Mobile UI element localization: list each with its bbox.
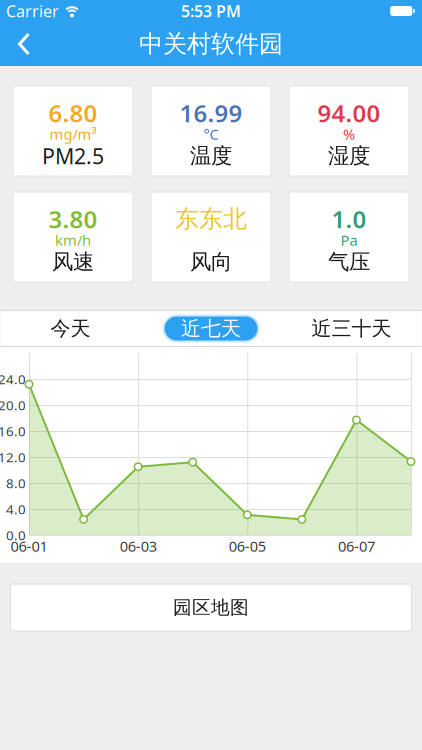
staticText: 东东北 <box>175 204 247 234</box>
staticText: 12.0 <box>0 448 26 466</box>
staticText: 94.00 <box>317 97 380 129</box>
staticText: 园区地图 <box>173 596 249 619</box>
staticText: 风速 <box>52 249 94 275</box>
staticText: 近七天 <box>181 316 241 341</box>
staticText: 3.80 <box>48 203 97 235</box>
button[interactable]: 今天 <box>0 311 140 346</box>
staticText: PM2.5 <box>42 142 104 170</box>
staticText: 1.0 <box>331 203 366 235</box>
staticText: 今天 <box>50 316 90 341</box>
staticText: 8.0 <box>6 474 26 492</box>
staticText: 06-03 <box>120 536 157 556</box>
staticText: mg/m³ <box>49 124 96 144</box>
staticText: 风向 <box>190 249 232 275</box>
button[interactable]: 近三十天 <box>281 311 421 346</box>
staticText: °C <box>203 124 218 144</box>
staticText: km/h <box>55 230 91 250</box>
staticText: Pa <box>340 230 357 250</box>
staticText: 16.99 <box>179 97 242 129</box>
staticText: 0.0 <box>6 526 26 544</box>
staticText: 24.0 <box>0 370 26 388</box>
staticText: % <box>343 124 355 144</box>
staticText: 4.0 <box>6 500 26 518</box>
button[interactable]: 近七天 <box>140 311 281 346</box>
staticText: 20.0 <box>0 396 26 414</box>
staticText: 06-07 <box>338 536 375 556</box>
staticText: 16.0 <box>0 422 26 440</box>
staticText: 5:53 PM <box>181 0 241 22</box>
staticText: 6.80 <box>48 97 97 129</box>
staticText: 湿度 <box>328 143 370 169</box>
staticText: 06-01 <box>10 536 47 556</box>
staticText: 中关村软件园 <box>139 29 283 59</box>
staticText: Carrier <box>6 0 59 22</box>
staticText: 温度 <box>190 143 232 169</box>
staticText: 气压 <box>328 249 370 275</box>
button[interactable]: Back <box>0 22 40 66</box>
staticText: 06-05 <box>229 536 266 556</box>
staticText: 近三十天 <box>311 316 391 341</box>
button[interactable]: 园区地图 <box>10 584 411 631</box>
